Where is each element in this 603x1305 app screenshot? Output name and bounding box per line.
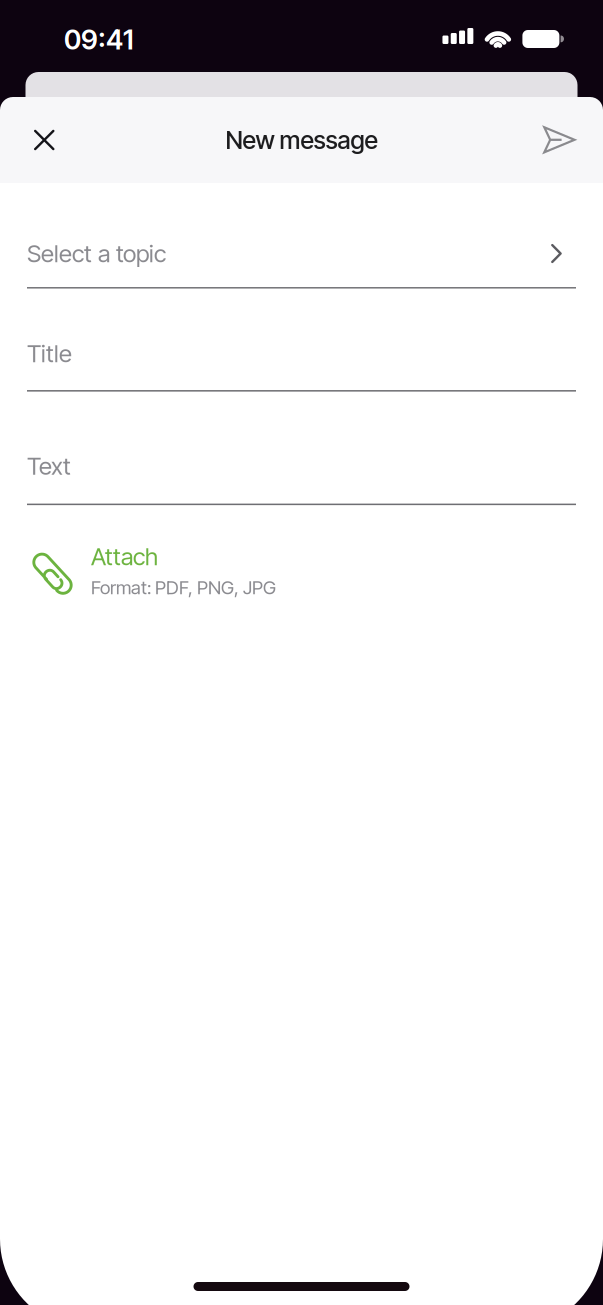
button[interactable]: Attach [27, 505, 576, 606]
button[interactable]: Select a topic [27, 183, 576, 288]
staticText: 09:41 [64, 23, 134, 56]
button[interactable]: Send [503, 97, 603, 183]
staticText: Select a topic [27, 239, 166, 268]
button[interactable]: Close [0, 97, 100, 183]
staticText: Format: PDF, PNG, JPG [91, 576, 276, 599]
staticText: Title [27, 339, 72, 368]
staticText: Attach [91, 542, 158, 571]
staticText: New message [225, 125, 377, 155]
staticText: Text [27, 452, 71, 481]
